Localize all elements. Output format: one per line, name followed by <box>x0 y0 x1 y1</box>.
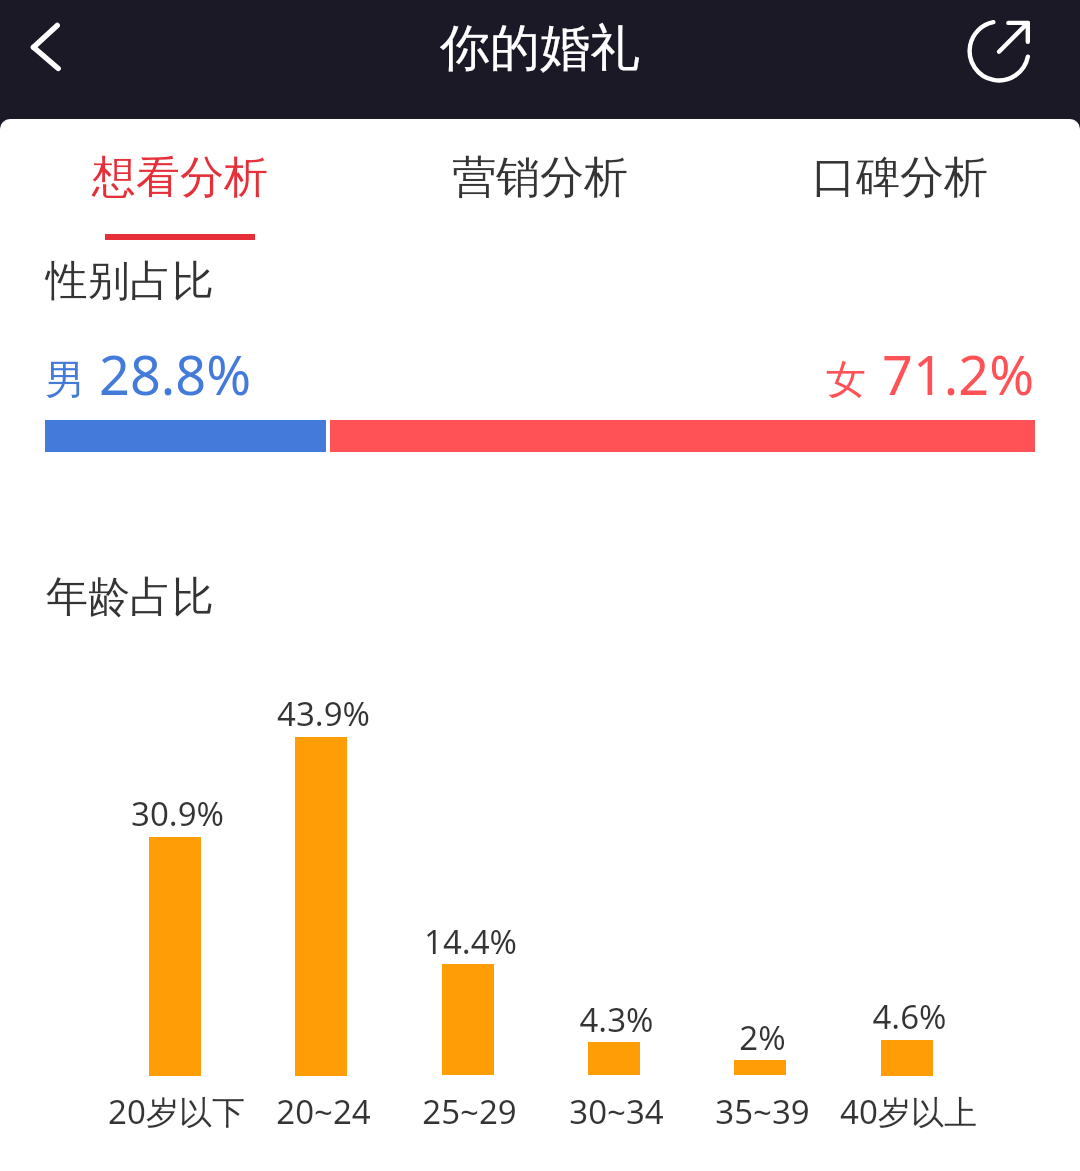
staticText: 30~34 <box>569 1089 664 1134</box>
staticText: 女 <box>826 354 866 404</box>
staticText: 30.9% <box>131 791 224 836</box>
staticText: 年龄占比 <box>46 571 214 624</box>
button[interactable]: 口碑分析 <box>720 119 1080 244</box>
staticText: 14.4% <box>424 919 517 964</box>
staticText: 20~24 <box>276 1089 371 1134</box>
staticText: 性别占比 <box>46 255 214 308</box>
staticText: 营销分析 <box>452 150 628 205</box>
staticText: 2% <box>739 1015 786 1060</box>
staticText: 43.9% <box>277 691 370 736</box>
staticText: 40岁以上 <box>840 1089 977 1134</box>
staticText: 71.2% <box>882 337 1035 411</box>
staticText: 口碑分析 <box>812 150 988 205</box>
button[interactable]: 想看分析 <box>0 119 360 244</box>
staticText: 男 <box>45 354 85 404</box>
staticText: 35~39 <box>715 1089 810 1134</box>
staticText: 25~29 <box>422 1089 517 1134</box>
button[interactable]: 营销分析 <box>360 119 720 244</box>
staticText: 4.3% <box>579 997 654 1042</box>
staticText: 20岁以下 <box>108 1089 245 1134</box>
staticText: 28.8% <box>99 337 252 411</box>
staticText: 想看分析 <box>92 150 268 205</box>
button[interactable]: Share <box>951 3 1047 99</box>
button[interactable]: Back <box>0 0 94 95</box>
staticText: 你的婚礼 <box>440 17 640 80</box>
staticText: 4.6% <box>872 994 947 1039</box>
